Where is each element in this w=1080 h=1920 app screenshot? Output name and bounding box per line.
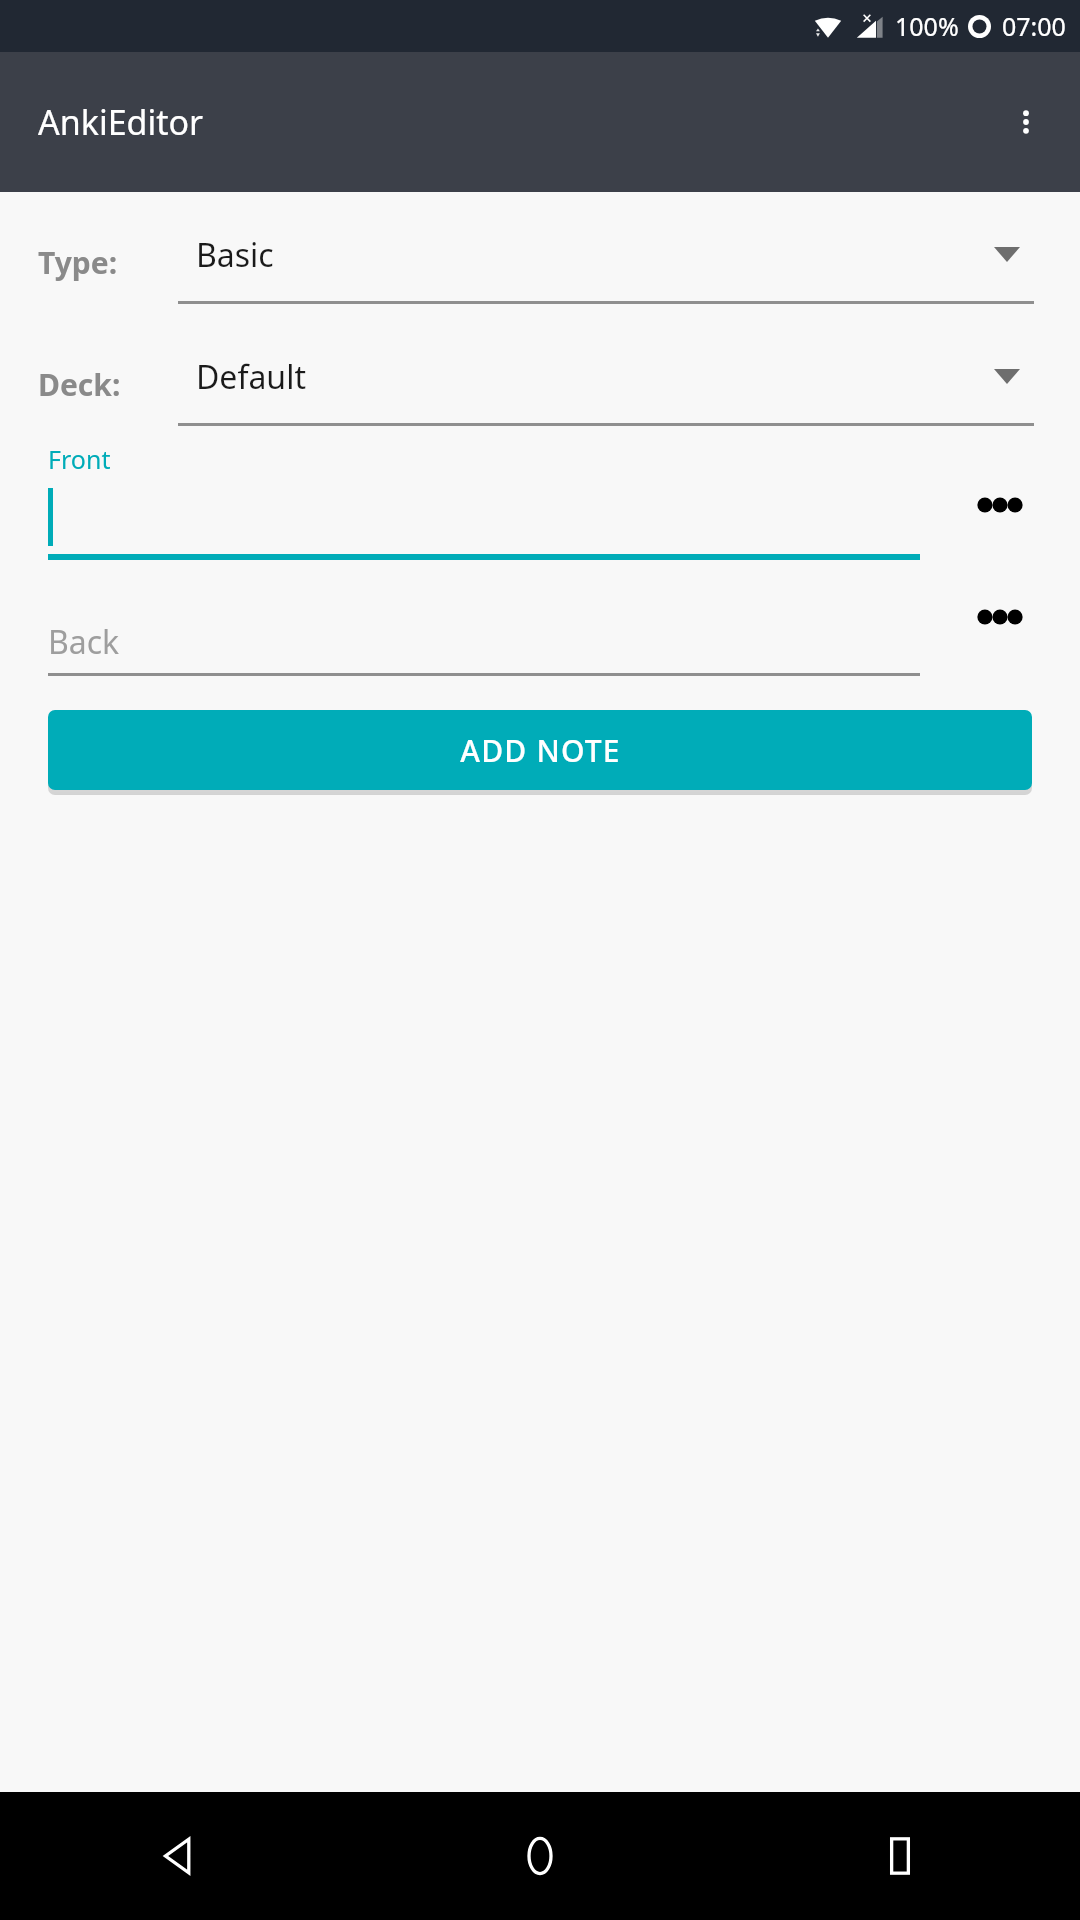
button[interactable]: ADD NOTE	[48, 710, 1032, 790]
button[interactable]: Back	[48, 604, 920, 676]
button[interactable]	[48, 488, 920, 560]
staticText: 100%	[895, 9, 959, 43]
staticText: AnkiEditor	[38, 99, 204, 145]
button[interactable]: Recent apps	[720, 1792, 1080, 1920]
button[interactable]: Home	[360, 1792, 720, 1920]
staticText: Default	[196, 355, 306, 399]
staticText: Deck:	[38, 364, 121, 405]
staticText: ADD NOTE	[460, 730, 621, 771]
button[interactable]: Default	[178, 342, 1034, 426]
button[interactable]: Back field options	[920, 604, 1080, 676]
button[interactable]: Front field options	[920, 488, 1080, 560]
staticText: Back	[48, 620, 120, 664]
button[interactable]: More options	[990, 86, 1062, 158]
staticText: Front	[48, 442, 111, 476]
staticText: Basic	[196, 233, 274, 277]
staticText: 07:00	[1002, 9, 1066, 43]
button[interactable]: Back	[0, 1792, 360, 1920]
staticText: Type:	[38, 242, 118, 283]
button[interactable]: Basic	[178, 220, 1034, 304]
